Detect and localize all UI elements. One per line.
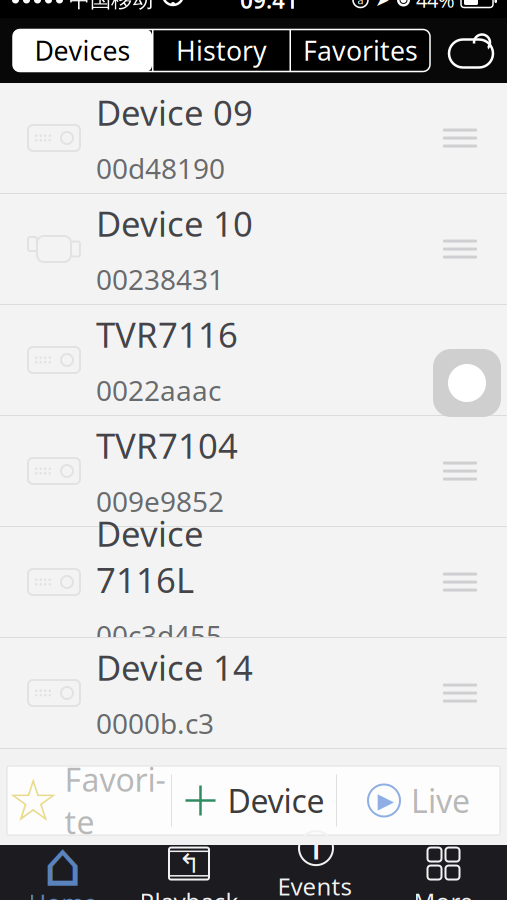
staticText: 0000b.c3 [96,704,214,742]
button[interactable]: Favorites [291,29,430,71]
staticText: Devices [34,33,130,68]
button[interactable]: ☆ [7,766,171,835]
staticText: More [413,886,473,900]
button[interactable]: ⌂ [0,845,126,900]
staticText: 44% [416,0,455,13]
staticText: 0022aaac [96,371,221,409]
staticText: History [176,33,267,68]
button[interactable]: Device 09 [0,83,507,194]
staticText: Device 10 [96,200,253,246]
staticText: Favorite [64,758,165,843]
button[interactable]: TVR7104 [0,416,507,527]
staticText: TVR7104 [96,422,238,468]
staticText: 09:41 [240,0,298,15]
button[interactable]: Cloud [445,30,497,70]
button[interactable]: Device 7116L [0,527,507,638]
staticText: Device 14 [96,644,253,690]
button[interactable]: Quick action [433,349,501,417]
staticText: Device 09 [96,89,253,135]
staticText: 00238431 [96,260,224,298]
staticText: Favorites [303,33,418,68]
staticText: i [312,829,320,868]
staticText: Playback [139,886,238,900]
staticText: Home [28,887,97,900]
staticText: ➤ [375,0,390,10]
staticText: 009e9852 [96,482,224,520]
staticText: ↰ [178,848,200,879]
staticText: Device 7116L [96,510,204,602]
button[interactable]: ↰ [126,845,252,900]
staticText: 中国移动 [69,0,153,13]
button[interactable]: More [380,845,507,900]
staticText: Live [411,779,470,822]
staticText: ▶ [377,788,393,813]
staticText: TVR7116 [96,311,238,357]
staticText: Events Center [277,870,354,900]
staticText: ⌂ [43,830,82,899]
button[interactable]: Device 14 [0,638,507,749]
button[interactable]: i [252,845,380,900]
staticText: a [357,0,363,7]
button[interactable]: Device [172,766,336,835]
button[interactable]: TVR7116 [0,305,507,416]
button[interactable]: ▶ [337,766,500,835]
staticText: ☆ [7,767,60,834]
staticText: Device [227,779,324,822]
button[interactable]: History [152,29,291,71]
button[interactable]: Devices [13,29,152,71]
staticText: 00c3d455 [96,616,222,654]
button[interactable]: Device 10 [0,194,507,305]
staticText: 00d48190 [96,149,225,187]
